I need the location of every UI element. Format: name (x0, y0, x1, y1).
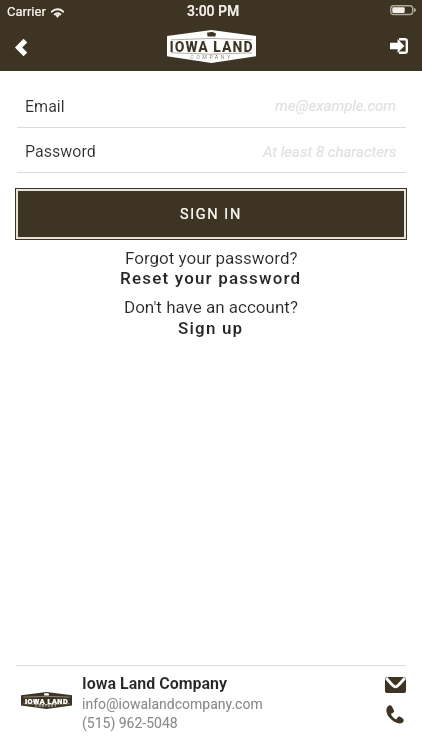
staticText: IOWA LAND (167, 39, 256, 55)
staticText: Carrier (7, 4, 46, 19)
button[interactable]: Call us (379, 698, 411, 730)
staticText: Forgot your password? (125, 248, 298, 268)
staticText: IOWA LAND (21, 697, 72, 705)
staticText: Iowa Land Company (82, 674, 228, 693)
staticText: Don't have an account? (124, 297, 298, 317)
button[interactable]: Don't have an account? (118, 296, 304, 318)
staticText: SIGN IN (180, 206, 242, 223)
staticText: Sign up (178, 318, 244, 338)
staticText: Password (25, 142, 96, 161)
staticText: 3:00 PM (187, 3, 240, 19)
button[interactable]: Back (0, 26, 44, 71)
button[interactable]: Password (25, 131, 397, 172)
staticText: Email (25, 97, 65, 116)
staticText: (515) 962-5048 (82, 715, 178, 731)
button[interactable]: Email (25, 85, 397, 127)
staticText: COMPANY (167, 54, 256, 60)
staticText: Reset your password (120, 268, 302, 288)
button[interactable]: SIGN IN (18, 191, 404, 237)
button[interactable]: Reset your password (114, 267, 308, 289)
button[interactable]: Sign in (377, 26, 421, 71)
staticText: me@example.com (275, 97, 397, 115)
button[interactable]: Sign up (172, 317, 250, 339)
button[interactable]: Email us (379, 669, 411, 701)
button[interactable]: Forgot your password? (119, 247, 304, 269)
staticText: COMPANY (21, 704, 72, 707)
staticText: info@iowalandcompany.com (82, 696, 263, 712)
staticText: At least 8 characters (263, 143, 397, 161)
